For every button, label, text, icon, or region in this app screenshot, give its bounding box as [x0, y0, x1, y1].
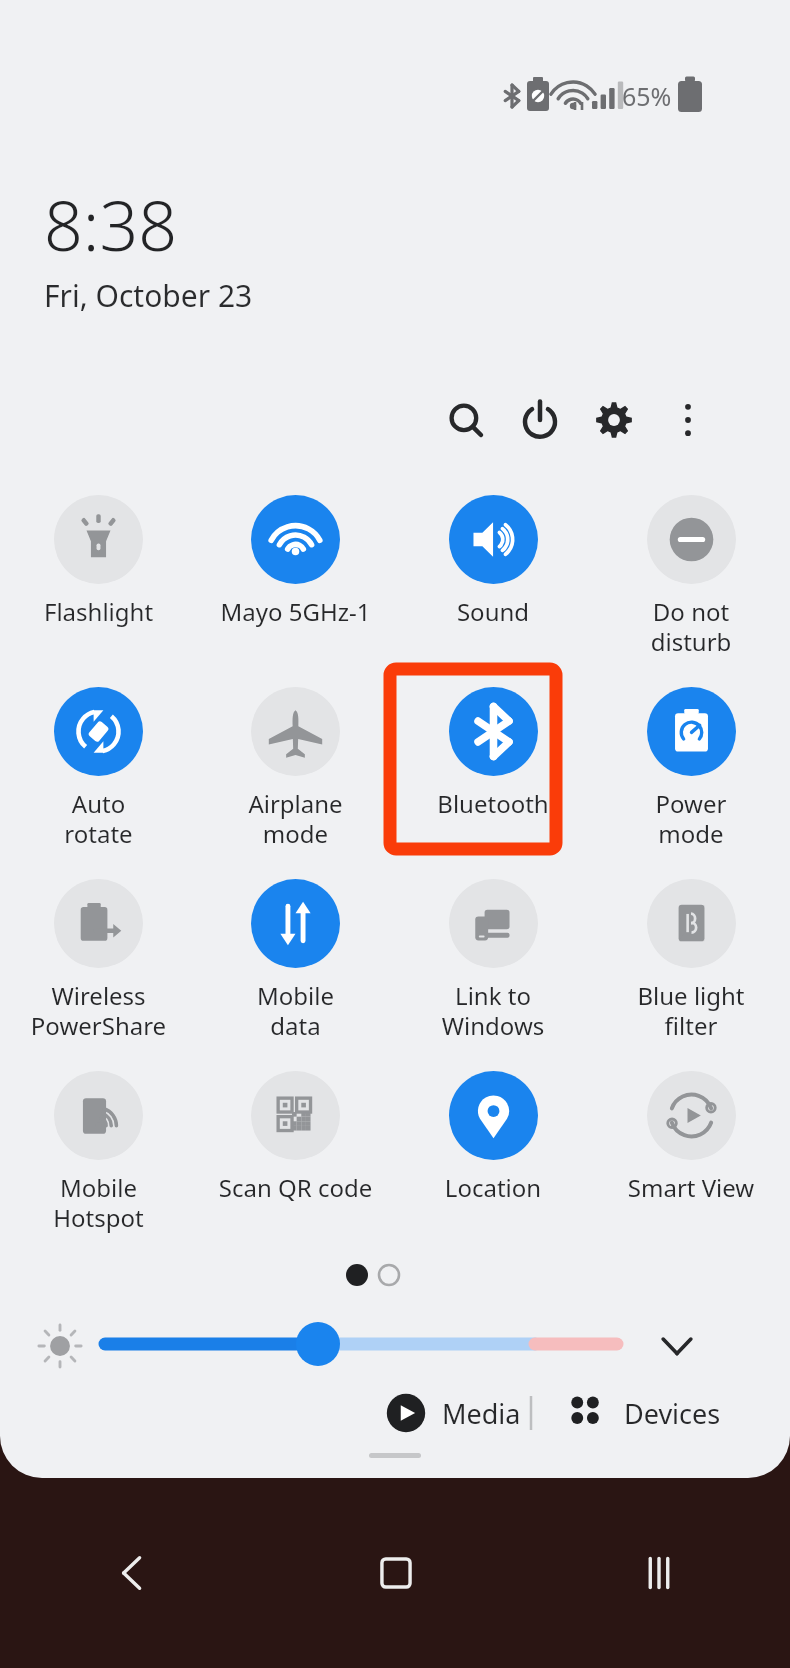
button[interactable]: Settings — [584, 390, 644, 450]
button[interactable]: Link to Windows — [394, 863, 592, 1055]
staticText: Airplane mode — [197, 787, 394, 850]
staticText: Media — [442, 1395, 521, 1432]
staticText: Blue light filter — [592, 979, 790, 1042]
button[interactable]: Bluetooth — [394, 671, 592, 863]
button[interactable]: Brightness — [28, 1314, 92, 1378]
button[interactable]: Blue light filter — [592, 863, 790, 1055]
staticText: Wireless PowerShare — [0, 979, 197, 1042]
staticText: Link to Windows — [394, 979, 592, 1042]
staticText: Fri, October 23 — [44, 275, 253, 316]
button[interactable]: Smart View — [592, 1055, 790, 1235]
button[interactable]: Auto rotate — [0, 671, 197, 863]
staticText: Power mode — [592, 787, 790, 850]
staticText: Devices — [624, 1395, 721, 1432]
button[interactable]: Back — [0, 1478, 264, 1668]
staticText: Mobile Hotspot — [0, 1171, 197, 1234]
button[interactable]: Devices — [568, 1378, 721, 1448]
button[interactable]: Sound — [394, 479, 592, 671]
staticText: Do not disturb — [592, 595, 790, 658]
button[interactable]: Airplane mode — [197, 671, 394, 863]
staticText: Location — [394, 1171, 592, 1204]
button[interactable]: Wireless PowerShare — [0, 863, 197, 1055]
button[interactable]: Power mode — [592, 671, 790, 863]
staticText: 65% — [622, 79, 672, 113]
staticText: Scan QR code — [197, 1171, 394, 1204]
button[interactable]: Home — [264, 1478, 527, 1668]
staticText: Sound — [394, 595, 592, 628]
staticText: 8:38 — [44, 178, 178, 271]
button[interactable]: Mobile data — [197, 863, 394, 1055]
button[interactable]: Expand brightness settings — [644, 1312, 710, 1378]
staticText: Mayo 5GHz-1 — [197, 595, 394, 628]
staticText: Auto rotate — [0, 787, 197, 850]
button[interactable]: Location — [394, 1055, 592, 1235]
staticText: Smart View — [592, 1171, 790, 1204]
button[interactable]: Scan QR code — [197, 1055, 394, 1235]
button[interactable]: Media — [382, 1378, 521, 1448]
button[interactable] — [100, 1308, 620, 1380]
button[interactable]: Search — [436, 390, 496, 450]
button[interactable]: Do not disturb — [592, 479, 790, 671]
button[interactable]: Flashlight — [0, 479, 197, 671]
button[interactable]: Mayo 5GHz-1 — [197, 479, 394, 671]
staticText: Bluetooth — [394, 787, 592, 820]
button[interactable]: More options — [658, 390, 718, 450]
button[interactable]: Mobile Hotspot — [0, 1055, 197, 1235]
staticText: Mobile data — [197, 979, 394, 1042]
button[interactable]: Power off — [510, 390, 570, 450]
staticText: Flashlight — [0, 595, 197, 628]
button[interactable]: Recent apps — [527, 1478, 790, 1668]
